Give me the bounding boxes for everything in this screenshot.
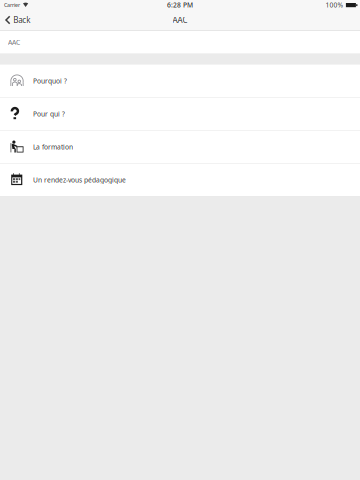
button[interactable]: Back: [0, 10, 36, 30]
staticText: Pourquoi ?: [33, 76, 67, 85]
staticText: AAC: [8, 38, 20, 47]
staticText: La formation: [33, 142, 73, 151]
button[interactable]: Pourquoi ?: [0, 65, 360, 98]
button[interactable]: La formation: [0, 131, 360, 164]
staticText: Un rendez-vous pédagogique: [33, 175, 126, 184]
staticText: 100%: [325, 1, 343, 9]
staticText: 6:28 PM: [167, 1, 193, 9]
staticText: AAC: [172, 15, 187, 25]
staticText: Pour qui ?: [33, 109, 65, 118]
staticText: Back: [13, 15, 30, 25]
button[interactable]: Pour qui ?: [0, 98, 360, 131]
button[interactable]: Un rendez-vous pédagogique: [0, 164, 360, 197]
staticText: Carrier: [4, 1, 20, 9]
